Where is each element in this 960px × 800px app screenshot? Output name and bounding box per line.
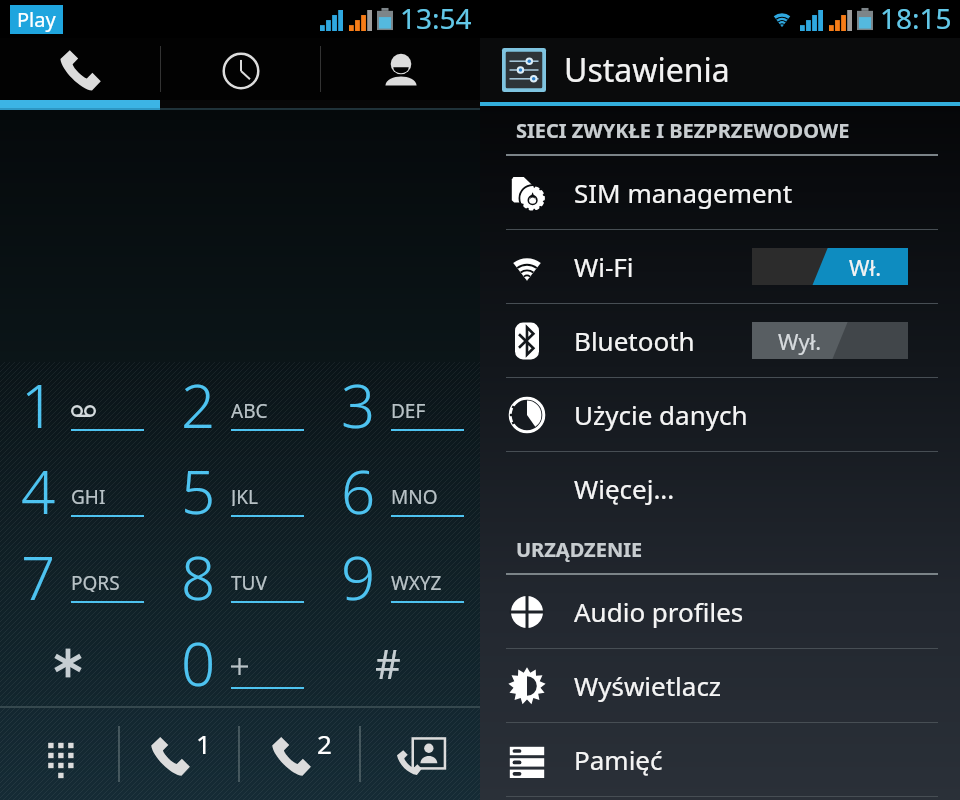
button[interactable]: Więcej... [480,452,960,525]
staticText: Wyświetlacz [574,668,722,703]
button[interactable]: Pamięć [480,723,960,796]
staticText: Wył. [778,326,822,356]
staticText: PQRS [71,570,120,592]
button[interactable]: Wyświetlacz [480,649,960,722]
button[interactable]: # [320,620,480,706]
staticText: Ustawienia [564,48,730,92]
staticText: Bluetooth [574,323,695,358]
button[interactable]: 2 [160,362,320,448]
button[interactable]: 9 [320,534,480,620]
button[interactable]: 8 [160,534,320,620]
button[interactable]: SIM management [480,156,960,229]
staticText: 6 [341,450,376,532]
button[interactable]: Wł. [752,248,908,285]
staticText: 8 [181,536,216,618]
staticText: 13:54 [400,0,472,37]
button[interactable]: Call with SIM 1 [120,708,238,800]
button[interactable]: Dial pad [0,38,160,100]
staticText: Play [17,6,56,33]
staticText: 5 [181,450,216,532]
staticText: Wł. [849,252,882,282]
button[interactable]: 6 [320,448,480,534]
staticText: GHI [71,484,106,506]
button[interactable]: Ustawienia [480,38,960,102]
button[interactable]: Wył. [752,322,908,359]
staticText: URZĄDZENIE [516,536,643,563]
button[interactable]: Star [0,620,160,706]
staticText: 3 [341,364,376,446]
staticText: 1 [196,726,211,761]
staticText: 1 [21,364,56,446]
staticText: WXYZ [391,570,442,592]
staticText: MNO [391,484,438,506]
staticText: TUV [231,570,267,592]
staticText: Pamięć [574,742,663,777]
staticText: SIM management [574,175,793,210]
staticText: 2 [317,726,332,761]
staticText: DEF [391,398,426,420]
staticText: SIECI ZWYKŁE I BEZPRZEWODOWE [516,117,850,144]
staticText: 0 [181,622,216,704]
button[interactable]: 3 [320,362,480,448]
button[interactable]: Wi-Fi [480,230,960,303]
button[interactable]: Add to contacts [361,708,480,800]
staticText: Wi-Fi [574,249,634,284]
button[interactable]: Audio profiles [480,575,960,648]
button[interactable]: Play [17,6,56,33]
staticText: 4 [21,450,56,532]
staticText: 7 [21,536,56,618]
staticText: 18:15 [880,0,952,37]
button[interactable]: Call log [161,38,320,100]
staticText: 2 [181,364,216,446]
button[interactable]: 5 [160,448,320,534]
staticText: Więcej... [574,471,675,506]
button[interactable]: Bluetooth [480,304,960,377]
staticText: # [375,636,401,690]
button[interactable]: 4 [0,448,160,534]
staticText: ABC [231,398,268,420]
staticText: JKL [231,484,258,506]
button[interactable]: Contacts [321,38,480,100]
button[interactable]: 1 [0,362,160,448]
button[interactable]: Call with SIM 2 [240,708,359,800]
button[interactable]: Dial pad [0,708,118,800]
button[interactable]: 0 [160,620,320,706]
staticText: Użycie danych [574,397,748,432]
staticText: Audio profiles [574,594,744,629]
button[interactable]: Użycie danych [480,378,960,451]
button[interactable]: 7 [0,534,160,620]
staticText: 9 [341,536,376,618]
